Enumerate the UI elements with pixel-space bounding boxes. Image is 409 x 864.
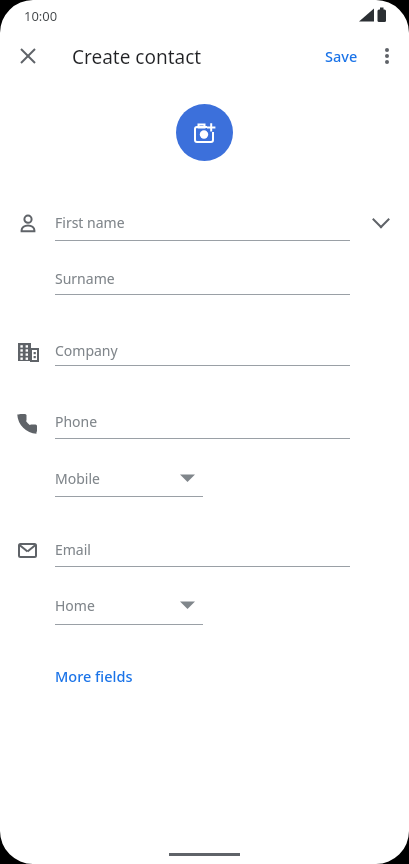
staticText: First name [55, 213, 125, 232]
staticText: Company [55, 341, 118, 360]
button[interactable] [176, 104, 233, 161]
staticText: Email [55, 540, 91, 559]
button[interactable] [365, 207, 397, 239]
staticText: Mobile [55, 469, 100, 488]
staticText: More fields [55, 666, 133, 686]
staticText: Surname [55, 269, 115, 288]
staticText: Create contact [72, 44, 202, 70]
staticText: Save [325, 46, 358, 66]
button[interactable] [4, 32, 52, 80]
button[interactable] [171, 589, 203, 621]
button[interactable]: Save [316, 40, 366, 72]
button[interactable] [171, 462, 203, 494]
staticText: 10:00 [24, 7, 58, 25]
staticText: Home [55, 596, 95, 615]
button[interactable] [371, 40, 403, 72]
button[interactable]: More fields [45, 662, 155, 690]
staticText: Phone [55, 412, 98, 431]
